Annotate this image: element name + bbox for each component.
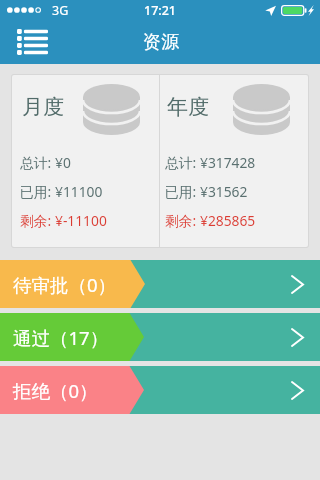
staticText: 已用:: [20, 182, 55, 201]
staticText: ¥285865: [200, 211, 256, 230]
button[interactable]: Menu: [12, 22, 53, 62]
staticText: 已用:: [165, 182, 200, 201]
staticText: 剩余:: [165, 211, 200, 230]
staticText: 剩余:: [20, 211, 55, 230]
button[interactable]: 拒绝（0）: [0, 366, 320, 414]
other: Open 拒绝（0）: [291, 381, 304, 400]
staticText: 通过（17）: [13, 325, 109, 350]
button[interactable]: 通过（17）: [0, 313, 320, 361]
staticText: 资源: [143, 31, 179, 54]
other: Open 通过（17）: [291, 328, 304, 347]
staticText: ¥317428: [200, 153, 256, 172]
staticText: 3G: [52, 2, 69, 19]
staticText: 月度: [22, 94, 64, 120]
staticText: ¥0: [55, 153, 71, 172]
staticText: 年度: [167, 94, 209, 120]
staticText: 总计:: [20, 153, 55, 172]
staticText: ¥31562: [200, 182, 248, 201]
staticText: 待审批（0）: [13, 272, 117, 297]
button[interactable]: 待审批（0）: [0, 260, 320, 308]
staticText: ¥11100: [55, 182, 103, 201]
staticText: 总计:: [165, 153, 200, 172]
staticText: 17:21: [144, 2, 177, 19]
staticText: ¥-11100: [55, 211, 107, 230]
staticText: 拒绝（0）: [13, 378, 98, 403]
other: Open 待审批（0）: [291, 275, 304, 294]
